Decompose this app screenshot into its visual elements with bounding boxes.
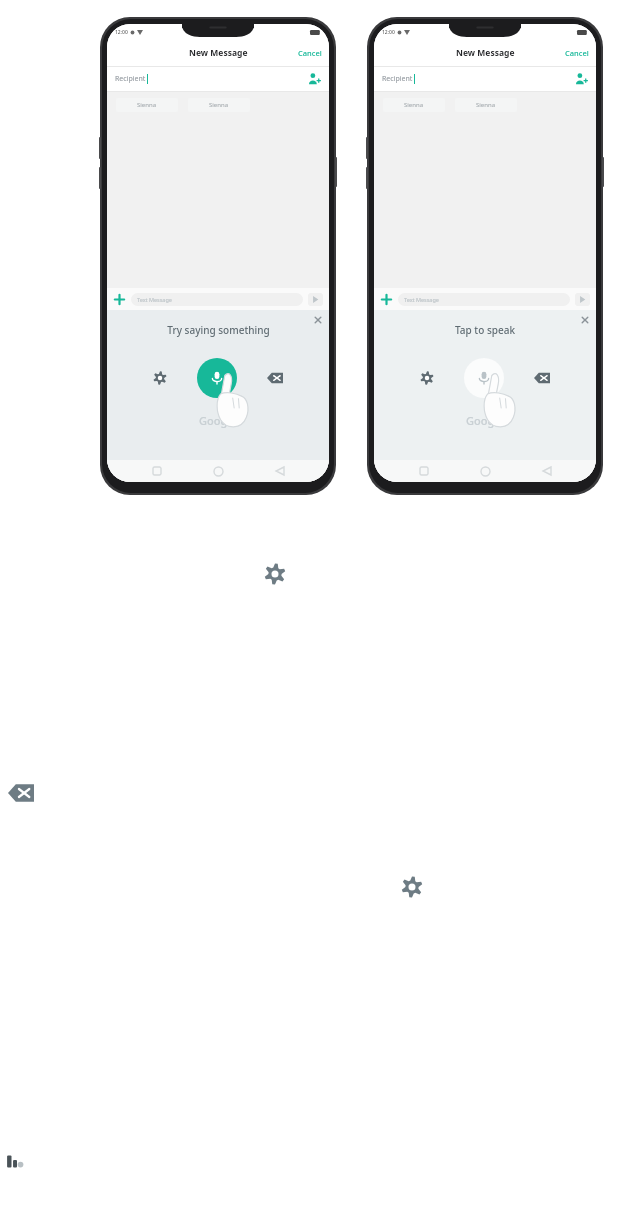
staticText: Sienna [137, 101, 157, 109]
button[interactable]: Home [206, 460, 230, 482]
staticText: Recipient [382, 74, 413, 84]
staticText: Sienna [404, 101, 424, 109]
button[interactable]: Sienna [116, 98, 178, 112]
staticText: Cancel [565, 48, 589, 58]
button[interactable]: Recents [412, 460, 436, 482]
staticText: Recipient [115, 74, 146, 84]
button[interactable]: Backspace [267, 372, 283, 384]
staticText: Sienna [476, 101, 496, 109]
button[interactable]: Attach [380, 293, 393, 306]
button[interactable]: Text Message [398, 293, 570, 306]
staticText: Text Message [404, 296, 439, 303]
button[interactable]: Back [268, 460, 292, 482]
button[interactable]: Cancel [298, 48, 322, 58]
button[interactable]: Sienna [383, 98, 445, 112]
button[interactable]: Send [308, 293, 323, 306]
button[interactable]: Close [313, 315, 323, 325]
button[interactable]: Backspace [8, 783, 34, 803]
button[interactable]: Recipient [115, 67, 321, 91]
button[interactable]: Voice settings [420, 371, 434, 385]
button[interactable]: Text Message [131, 293, 303, 306]
staticText: Text Message [137, 296, 172, 303]
staticText: 12:00 [115, 29, 128, 36]
button[interactable]: Recipient [382, 67, 588, 91]
button[interactable]: Microphone [197, 358, 237, 398]
button[interactable]: Send [575, 293, 590, 306]
button[interactable]: Back [535, 460, 559, 482]
staticText: Google [199, 413, 237, 428]
button[interactable]: Sienna [455, 98, 517, 112]
button[interactable]: Backspace [534, 372, 550, 384]
button[interactable]: Sienna [188, 98, 250, 112]
button[interactable]: Home [473, 460, 497, 482]
staticText: 12:00 [382, 29, 395, 36]
staticText: Sienna [209, 101, 229, 109]
button[interactable]: Settings [264, 563, 286, 585]
staticText: New Message [456, 47, 515, 59]
staticText: Try saying something [167, 323, 270, 337]
button[interactable]: Cancel [565, 48, 589, 58]
staticText: Tap to speak [455, 323, 515, 337]
staticText: Cancel [298, 48, 322, 58]
button[interactable]: Add contact [574, 72, 588, 86]
staticText: Google [466, 413, 504, 428]
button[interactable]: Close [580, 315, 590, 325]
staticText: New Message [189, 47, 248, 59]
button[interactable]: Add contact [307, 72, 321, 86]
button[interactable]: Voice settings [153, 371, 167, 385]
button[interactable]: Attach [113, 293, 126, 306]
button[interactable]: Settings [401, 876, 423, 898]
button[interactable]: Signal [6, 1150, 28, 1172]
button[interactable]: Recents [145, 460, 169, 482]
button[interactable]: Microphone [464, 358, 504, 398]
